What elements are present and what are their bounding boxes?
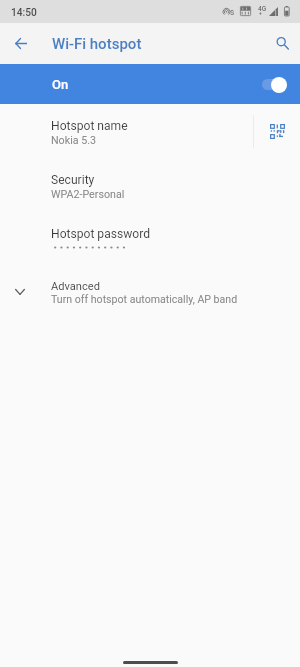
- staticText: Hotspot name: [51, 119, 128, 133]
- staticText: Hotspot password: [51, 227, 151, 241]
- staticText: On: [52, 77, 69, 92]
- staticText: Turn off hotspot automatically, AP band: [51, 293, 238, 305]
- button[interactable]: Expand advanced settings: [0, 266, 300, 320]
- staticText: 14:50: [11, 7, 37, 19]
- other: Expand advanced settings: [5, 276, 35, 306]
- button[interactable]: Security: [0, 158, 300, 212]
- staticText: WPA2-Personal: [51, 188, 125, 201]
- button[interactable]: Search: [265, 26, 300, 61]
- staticText: Advanced: [51, 280, 100, 293]
- button[interactable]: Hotspot password: [0, 212, 300, 266]
- staticText: Security: [51, 173, 95, 187]
- button[interactable]: On: [0, 64, 300, 104]
- staticText: Nokia 5.3: [51, 134, 97, 147]
- button[interactable]: Navigate up: [3, 26, 38, 61]
- staticText: s: [230, 7, 235, 17]
- staticText: 4G: [258, 5, 267, 13]
- button[interactable]: Share hotspot QR code: [262, 116, 293, 147]
- staticText: Wi-Fi hotspot: [52, 35, 142, 53]
- staticText: +: [259, 10, 262, 16]
- button[interactable]: Hotspot name: [0, 104, 300, 158]
